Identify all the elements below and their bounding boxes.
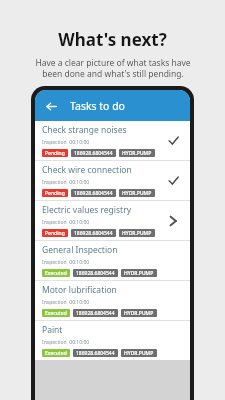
staticText: Inspection 00:10:00: [42, 139, 90, 146]
staticText: Inspection 00:10:00: [42, 219, 90, 226]
staticText: Check strange noises: [42, 124, 127, 136]
staticText: Pending: [45, 150, 65, 157]
button[interactable]: Electric values registry: [35, 201, 190, 240]
staticText: HYDR.PUMP: [122, 230, 152, 237]
staticText: What's next?: [58, 28, 167, 51]
staticText: HYDR.PUMP: [124, 270, 154, 277]
staticText: HYDR.PUMP: [122, 150, 152, 157]
button[interactable]: Paint: [35, 321, 190, 360]
staticText: 186928.6804544: [76, 350, 115, 357]
staticText: Inspection 00:10:00: [42, 339, 90, 346]
staticText: Motor lubrification: [42, 284, 117, 296]
staticText: General Inspection: [42, 244, 118, 256]
button[interactable]: General Inspection: [35, 241, 190, 280]
staticText: Tasks to do: [70, 99, 125, 113]
staticText: 186928.6804544: [74, 150, 113, 157]
staticText: Electric values registry: [42, 204, 132, 216]
staticText: HYDR.PUMP: [124, 350, 154, 357]
staticText: Pending: [45, 230, 65, 237]
button[interactable]: Check wire connection: [35, 161, 190, 200]
staticText: 186928.6804544: [74, 190, 113, 197]
staticText: Executed: [45, 310, 67, 317]
staticText: Inspection 00:10:00: [42, 259, 90, 266]
staticText: Executed: [45, 350, 67, 357]
button[interactable]: Check strange noises: [35, 121, 190, 160]
staticText: 186928.6804544: [76, 310, 115, 317]
staticText: 186928.6804544: [76, 270, 115, 277]
staticText: Paint: [42, 324, 63, 336]
staticText: Have a clear picture of what tasks have …: [35, 57, 191, 79]
staticText: HYDR.PUMP: [124, 310, 154, 317]
button[interactable]: Motor lubrification: [35, 281, 190, 320]
button[interactable]: Back: [43, 98, 59, 114]
staticText: HYDR.PUMP: [122, 190, 152, 197]
staticText: Inspection 00:10:00: [42, 179, 90, 186]
staticText: Executed: [45, 270, 67, 277]
staticText: Check wire connection: [42, 164, 132, 176]
staticText: Inspection 00:10:00: [42, 299, 90, 306]
staticText: Pending: [45, 190, 65, 197]
staticText: 186928.6804544: [74, 230, 113, 237]
